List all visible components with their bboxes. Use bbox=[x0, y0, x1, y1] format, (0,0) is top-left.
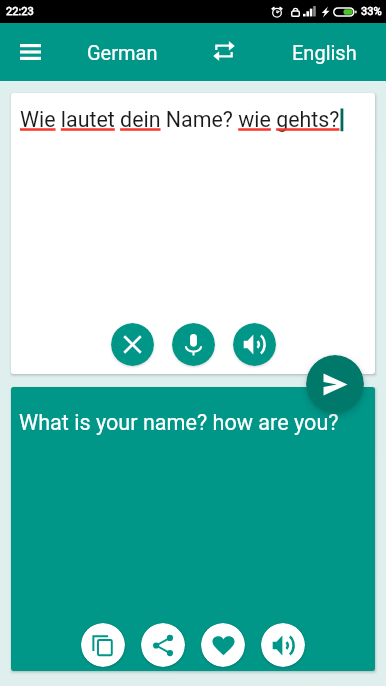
button[interactable]: Copy bbox=[81, 623, 125, 667]
button[interactable]: Menu bbox=[10, 32, 50, 72]
button[interactable]: Favorite bbox=[201, 623, 245, 667]
button[interactable]: Swap languages bbox=[203, 30, 244, 71]
button[interactable]: Speak bbox=[261, 623, 305, 667]
button[interactable]: Send bbox=[306, 355, 364, 413]
button[interactable]: German bbox=[76, 29, 168, 75]
staticText: 33% bbox=[361, 5, 382, 18]
button[interactable]: Clear bbox=[111, 323, 154, 366]
button[interactable]: Voice input bbox=[172, 323, 215, 366]
staticText: English bbox=[292, 41, 357, 64]
staticText: What is your name? how are you? bbox=[19, 410, 339, 435]
staticText: German bbox=[87, 41, 158, 64]
button[interactable]: English bbox=[282, 29, 366, 75]
button[interactable]: Speak bbox=[233, 323, 276, 366]
button[interactable]: Share bbox=[141, 623, 185, 667]
staticText: 22:23 bbox=[6, 5, 34, 18]
